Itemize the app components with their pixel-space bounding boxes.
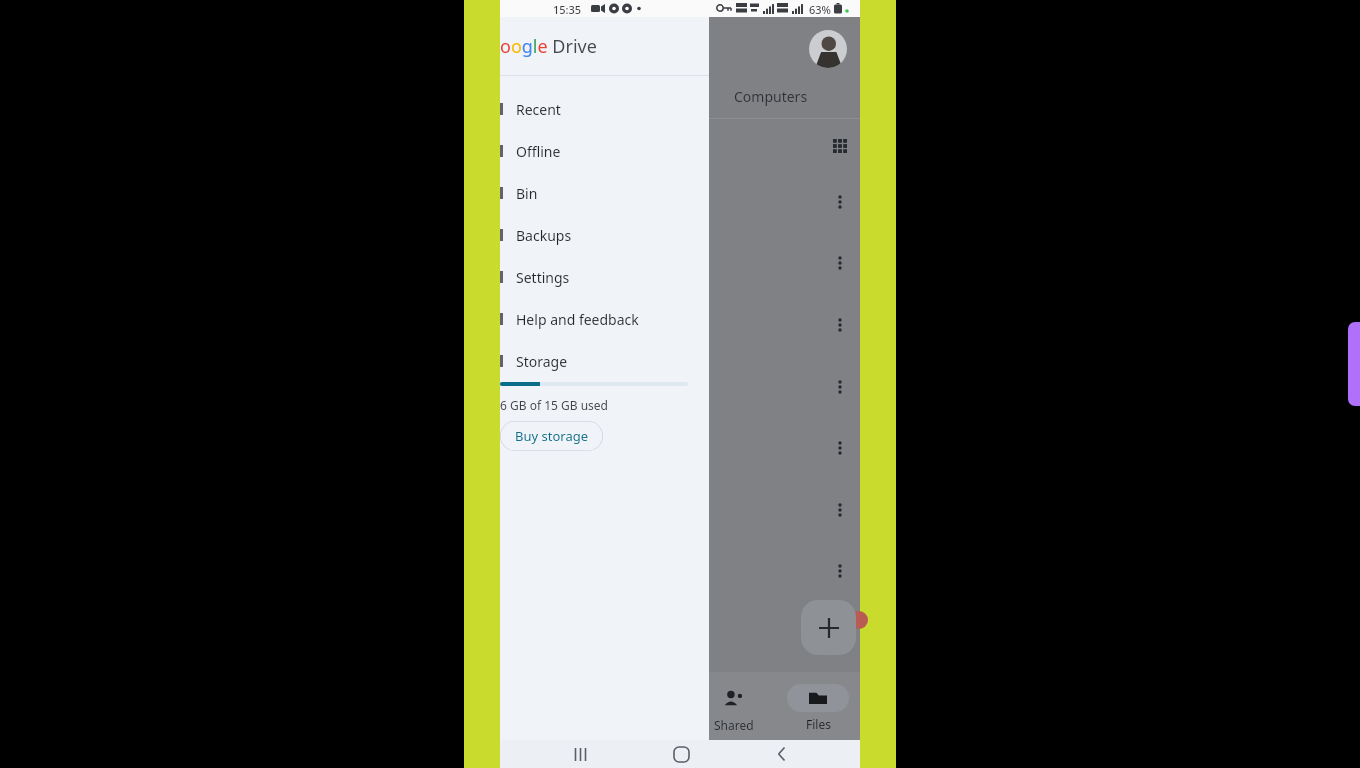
button[interactable]: More options xyxy=(828,375,852,399)
staticText: 6 GB of 15 GB used xyxy=(500,397,608,413)
staticText: Recent xyxy=(516,100,561,119)
button[interactable]: More options xyxy=(828,559,852,583)
staticText: oogle Drive xyxy=(500,34,597,59)
button[interactable]: Recent xyxy=(500,88,709,130)
button[interactable]: More options xyxy=(828,190,852,214)
button[interactable]: Offline xyxy=(500,130,709,172)
staticText: Computers xyxy=(734,87,808,106)
button[interactable]: Account xyxy=(809,30,847,68)
button[interactable]: Back xyxy=(752,740,812,768)
staticText: Storage xyxy=(516,352,568,371)
staticText: Buy storage xyxy=(515,427,589,445)
button[interactable]: Files xyxy=(782,684,854,732)
staticText: Files xyxy=(806,716,831,732)
button[interactable]: Help and feedback xyxy=(500,298,709,340)
staticText: Shared xyxy=(714,717,754,733)
staticText: Bin xyxy=(516,184,538,203)
button[interactable]: Settings xyxy=(500,256,709,298)
staticText: Offline xyxy=(516,142,561,161)
button[interactable]: Shared xyxy=(700,688,768,733)
button[interactable]: Home xyxy=(651,740,711,768)
button[interactable]: More options xyxy=(828,313,852,337)
button[interactable]: Create new xyxy=(801,600,856,655)
staticText: 15:35 xyxy=(553,2,582,17)
button[interactable]: Storage xyxy=(500,340,709,382)
staticText: 63% xyxy=(809,2,831,17)
button[interactable]: More options xyxy=(828,498,852,522)
button[interactable]: More options xyxy=(828,436,852,460)
button[interactable]: More options xyxy=(828,251,852,275)
staticText: Settings xyxy=(516,268,570,287)
button[interactable]: Buy storage xyxy=(500,421,603,451)
staticText: Backups xyxy=(516,226,572,245)
staticText: Help and feedback xyxy=(516,310,639,329)
button[interactable]: Grid view xyxy=(828,134,852,158)
button[interactable]: Backups xyxy=(500,214,709,256)
button[interactable]: Recents xyxy=(550,740,610,768)
button[interactable]: Bin xyxy=(500,172,709,214)
